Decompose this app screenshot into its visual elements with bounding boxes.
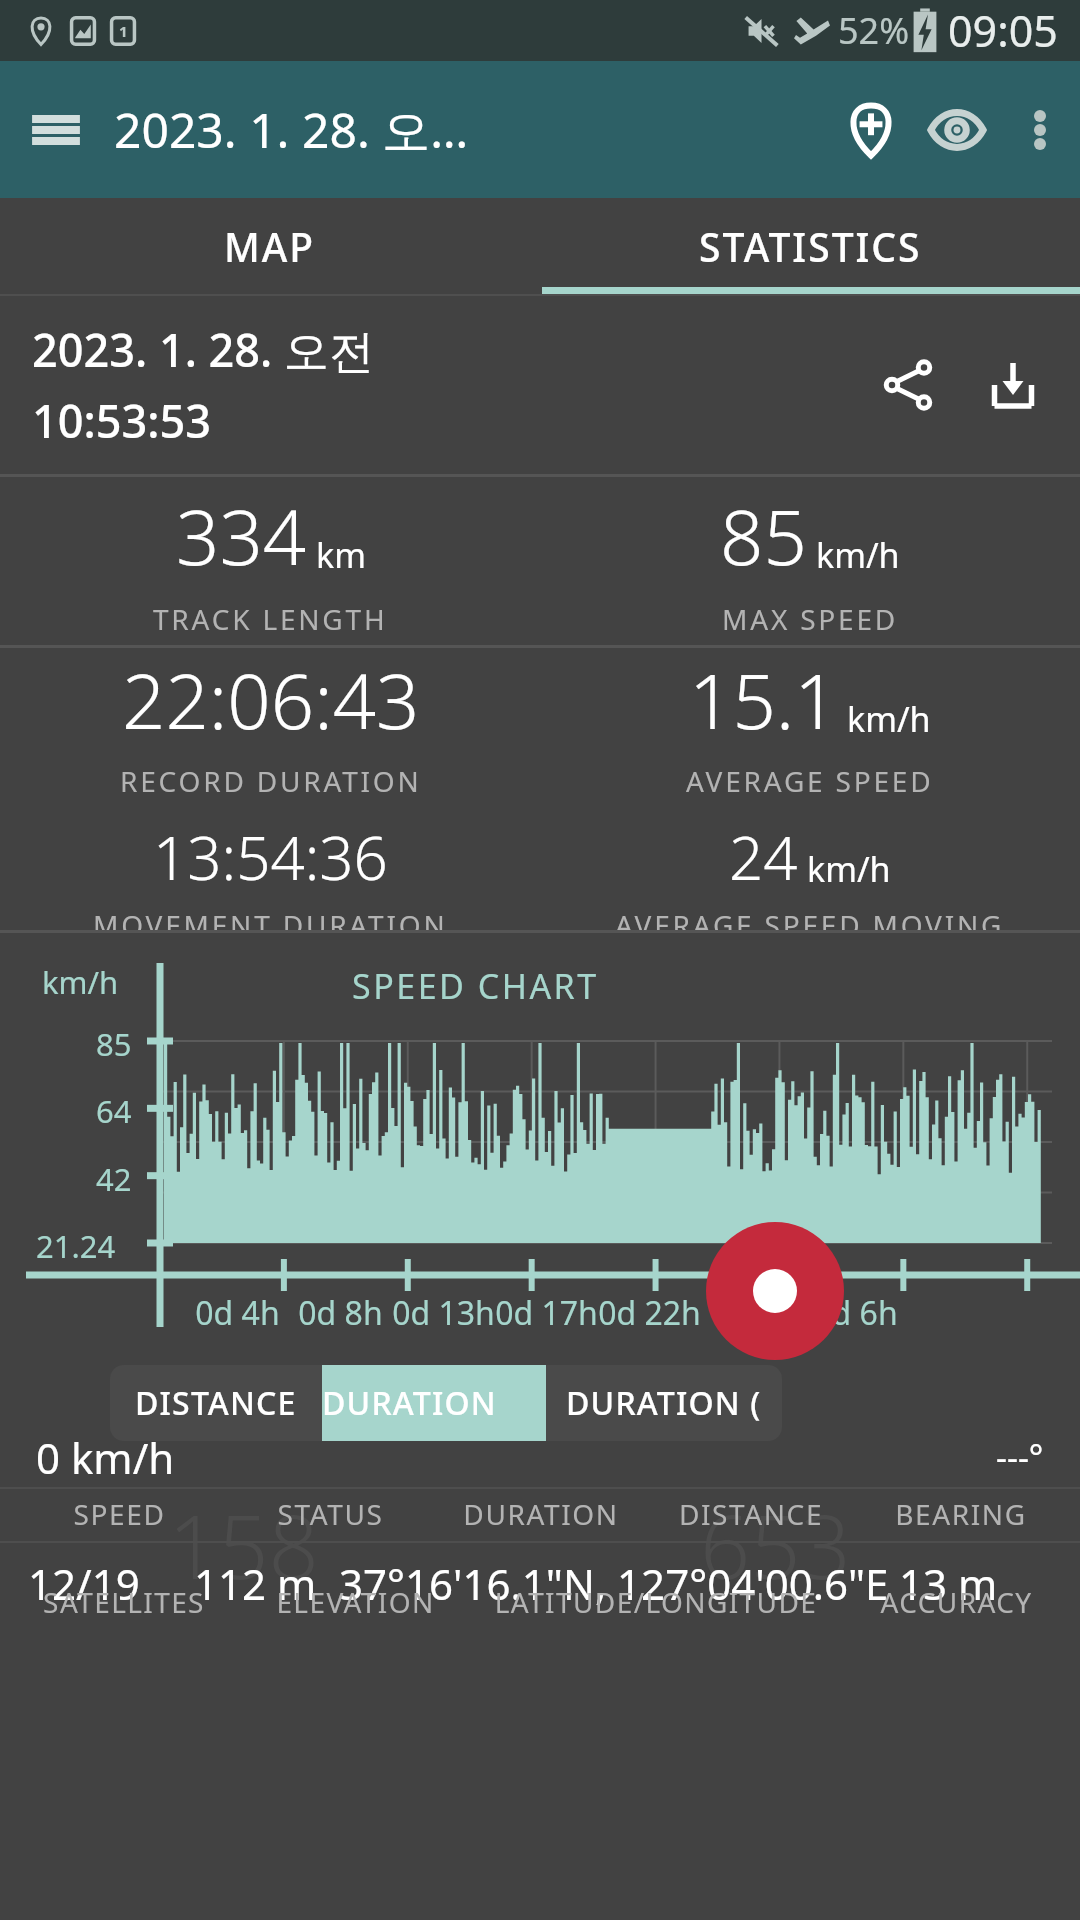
staticText: SPEED CHART <box>352 963 599 1009</box>
staticText: 158 <box>168 1485 319 1605</box>
staticText: 0d 13h <box>392 1291 495 1335</box>
staticText: DURATION ( <box>566 1381 762 1425</box>
staticText: 112 m <box>194 1555 317 1612</box>
staticText: 1d 2h <box>701 1291 804 1335</box>
staticText: 24 <box>729 816 798 898</box>
staticText: 0d 8h <box>289 1291 392 1335</box>
button[interactable]: 15.1 <box>540 648 1080 930</box>
staticText: DISTANCE <box>646 1495 856 1533</box>
staticText: 334 <box>176 484 307 588</box>
button[interactable]: DURATION ( <box>546 1365 782 1441</box>
staticText: km/h <box>847 696 931 742</box>
staticText: MAP <box>224 220 316 273</box>
staticText: 1d 6h <box>804 1291 907 1335</box>
staticText: 52% <box>838 6 910 55</box>
staticText: km/h <box>816 532 900 578</box>
button[interactable]: MAP <box>0 198 540 294</box>
button[interactable]: STATISTICS <box>540 198 1080 294</box>
staticText: 85 <box>720 484 807 588</box>
button[interactable]: DURATION (S) <box>322 1365 546 1441</box>
staticText: 64 <box>96 1090 132 1132</box>
button[interactable]: 85 <box>540 477 1080 645</box>
staticText: STATISTICS <box>699 220 922 273</box>
staticText: 42 <box>96 1158 132 1200</box>
staticText: 0d 17h <box>495 1291 598 1335</box>
staticText: DURATION (S) <box>322 1381 546 1425</box>
staticText: 2023. 1. 28. 오… <box>114 97 828 163</box>
staticText: MAX SPEED <box>722 600 899 638</box>
staticText: 0 km/h <box>36 1429 175 1486</box>
staticText: 0d 22h <box>598 1291 701 1335</box>
staticText: SATELLITES <box>8 1583 240 1621</box>
button[interactable]: 334 <box>0 477 540 645</box>
button[interactable]: Download <box>970 342 1056 428</box>
button[interactable]: Toggle visibility <box>914 87 1000 173</box>
staticText: 13:54:36 <box>153 816 388 898</box>
staticText: 37°16'16.1"N, 127°04'00.6"E <box>339 1555 889 1612</box>
button[interactable]: More options <box>1000 90 1080 170</box>
staticText: 15.1 <box>689 648 838 752</box>
button[interactable]: Open navigation menu <box>18 92 94 168</box>
staticText: km/h <box>42 961 119 1003</box>
staticText: AVERAGE SPEED MOVING <box>615 906 1005 930</box>
staticText: 09:05 <box>948 1 1058 60</box>
staticText: AVERAGE SPEED <box>686 762 934 800</box>
staticText: MOVEMENT DURATION <box>93 906 448 930</box>
staticText: SPEED <box>14 1495 225 1533</box>
staticText: 1 <box>119 21 128 41</box>
staticText: RECORD DURATION <box>120 762 422 800</box>
staticText: BEARING <box>856 1495 1066 1533</box>
staticText: 653 <box>700 1485 851 1605</box>
staticText: 0d 4h <box>186 1291 289 1335</box>
staticText: LATITUDE/LONGITUDE <box>471 1583 841 1621</box>
button[interactable]: DISTANCE <box>110 1365 322 1441</box>
staticText: 12/19 <box>28 1555 140 1612</box>
button[interactable]: Add waypoint <box>828 87 914 173</box>
staticText: ELEVATION <box>240 1583 471 1621</box>
staticText: DISTANCE <box>135 1381 297 1425</box>
staticText: 2023. 1. 28. 오전 <box>32 319 375 380</box>
staticText: ---° <box>996 1434 1044 1480</box>
staticText: 22:06:43 <box>122 648 420 752</box>
button[interactable]: 22:06:43 <box>0 648 540 930</box>
staticText: 13 m <box>899 1555 998 1612</box>
staticText: STATUS <box>225 1495 436 1533</box>
staticText: km <box>316 532 366 578</box>
staticText: 85 <box>96 1023 132 1065</box>
staticText: km/h <box>807 846 891 892</box>
staticText: DURATION <box>436 1495 646 1533</box>
button[interactable]: Share <box>866 342 952 428</box>
staticText: TRACK LENGTH <box>153 600 388 638</box>
staticText: ACCURACY <box>841 1583 1072 1621</box>
staticText: 21.24 <box>36 1225 116 1267</box>
staticText: 10:53:53 <box>32 390 211 451</box>
button[interactable]: Start recording <box>706 1222 844 1360</box>
